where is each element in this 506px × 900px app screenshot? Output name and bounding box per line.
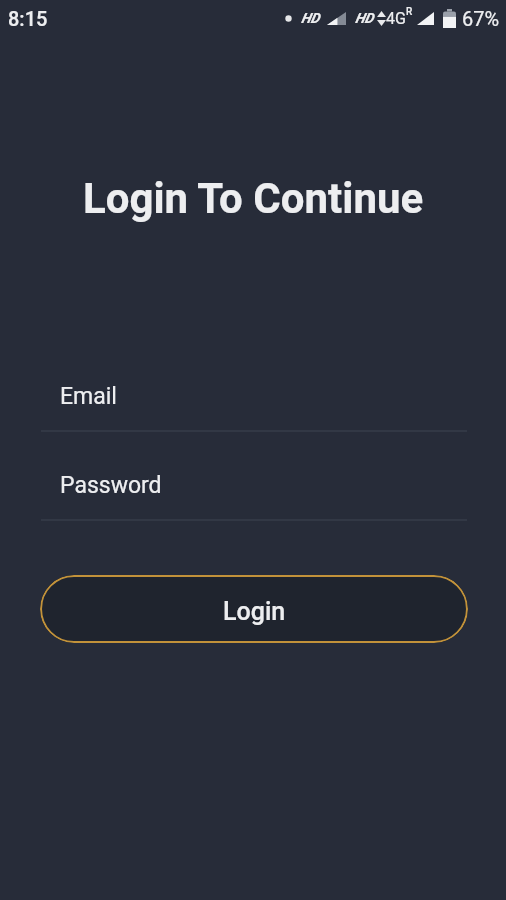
staticText: HD: [355, 10, 374, 26]
staticText: Login: [223, 597, 286, 626]
staticText: Password: [60, 472, 162, 499]
staticText: Login To Continue: [83, 174, 424, 223]
staticText: 4G: [386, 9, 406, 28]
staticText: 8:15: [8, 7, 48, 30]
staticText: 67%: [462, 7, 500, 30]
staticText: HD: [301, 10, 320, 26]
button[interactable]: Email: [41, 372, 467, 432]
staticText: Email: [60, 383, 117, 410]
button[interactable]: Login: [40, 575, 468, 643]
button[interactable]: Password: [41, 461, 467, 521]
staticText: R: [406, 6, 413, 18]
